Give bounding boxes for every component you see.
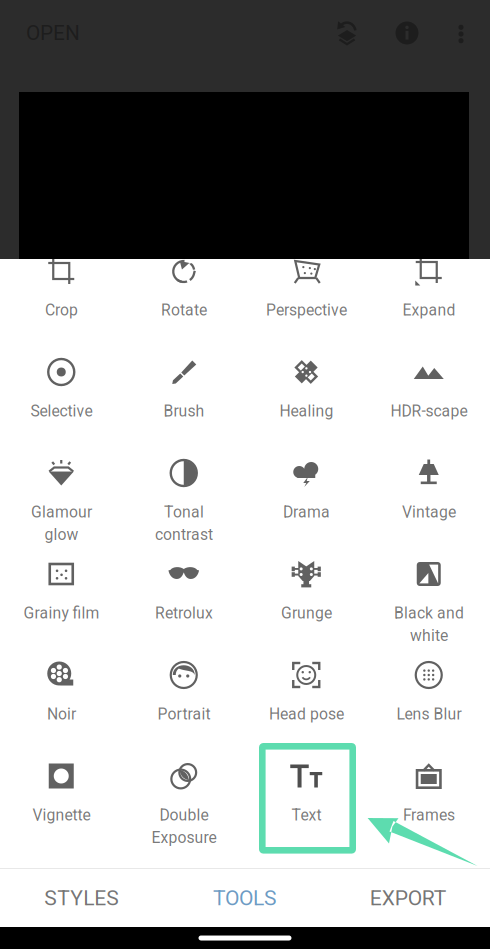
button[interactable]: Healing [245,354,367,455]
staticText: Retrolux [155,604,213,622]
button[interactable]: Rotate [122,253,245,354]
staticText: OPEN [26,21,80,45]
staticText: Head pose [269,705,344,723]
staticText: Noir [47,705,76,723]
staticText: Grainy film [23,604,99,622]
button[interactable]: Expand [367,253,490,354]
button[interactable]: Vignette [0,758,122,859]
staticText: HDR-scape [390,402,467,420]
button[interactable]: Double Exposure [122,758,245,859]
button[interactable]: Grunge [245,556,367,657]
staticText: Expand [402,301,455,319]
button[interactable]: Lens Blur [367,657,490,758]
staticText: Lens Blur [396,705,461,723]
staticText: Vignette [32,806,90,824]
staticText: Double Exposure [151,806,216,847]
button[interactable]: Frames [367,758,490,859]
staticText: Frames [403,806,455,824]
staticText: Grunge [281,604,332,622]
staticText: Healing [279,402,333,420]
staticText: Glamour glow [31,503,92,544]
staticText: OPEN [26,21,80,45]
staticText: EXPORT [370,886,447,910]
button[interactable]: Selective [0,354,122,455]
staticText: Portrait [157,705,210,723]
button[interactable]: Portrait [122,657,245,758]
staticText: Perspective [266,301,347,319]
staticText: Crop [45,301,78,319]
button[interactable]: Brush [122,354,245,455]
button[interactable]: Perspective [245,253,367,354]
staticText: Brush [163,402,204,420]
staticText: Vintage [402,503,456,521]
button[interactable]: Tonal contrast [122,455,245,556]
staticText: Drama [283,503,330,521]
button[interactable]: OPEN [26,0,104,66]
staticText: Tonal contrast [155,503,213,544]
staticText: TOOLS [213,886,277,910]
staticText: Text [291,806,321,824]
button[interactable]: Retrolux [122,556,245,657]
button[interactable]: Undo history [325,0,369,66]
button[interactable]: Grainy film [0,556,122,657]
button[interactable]: HDR-scape [367,354,490,455]
button[interactable]: Text [245,758,367,859]
button[interactable]: Black and white [367,556,490,657]
staticText: STYLES [44,886,119,910]
button[interactable]: Vintage [367,455,490,556]
button[interactable]: STYLES [0,869,163,927]
staticText: Black and white [394,604,464,645]
staticText: Selective [30,402,92,420]
button[interactable]: Crop [0,253,122,354]
staticText: Rotate [161,301,207,319]
button[interactable]: OPEN [26,0,104,66]
button[interactable]: Undo history [325,0,369,66]
button[interactable]: Noir [0,657,122,758]
button[interactable]: Glamour glow [0,455,122,556]
button[interactable]: Info [385,0,429,66]
button[interactable]: EXPORT [327,869,490,927]
button[interactable]: TOOLS [163,869,327,927]
button[interactable]: Info [385,0,429,66]
button[interactable]: Drama [245,455,367,556]
button[interactable]: Head pose [245,657,367,758]
